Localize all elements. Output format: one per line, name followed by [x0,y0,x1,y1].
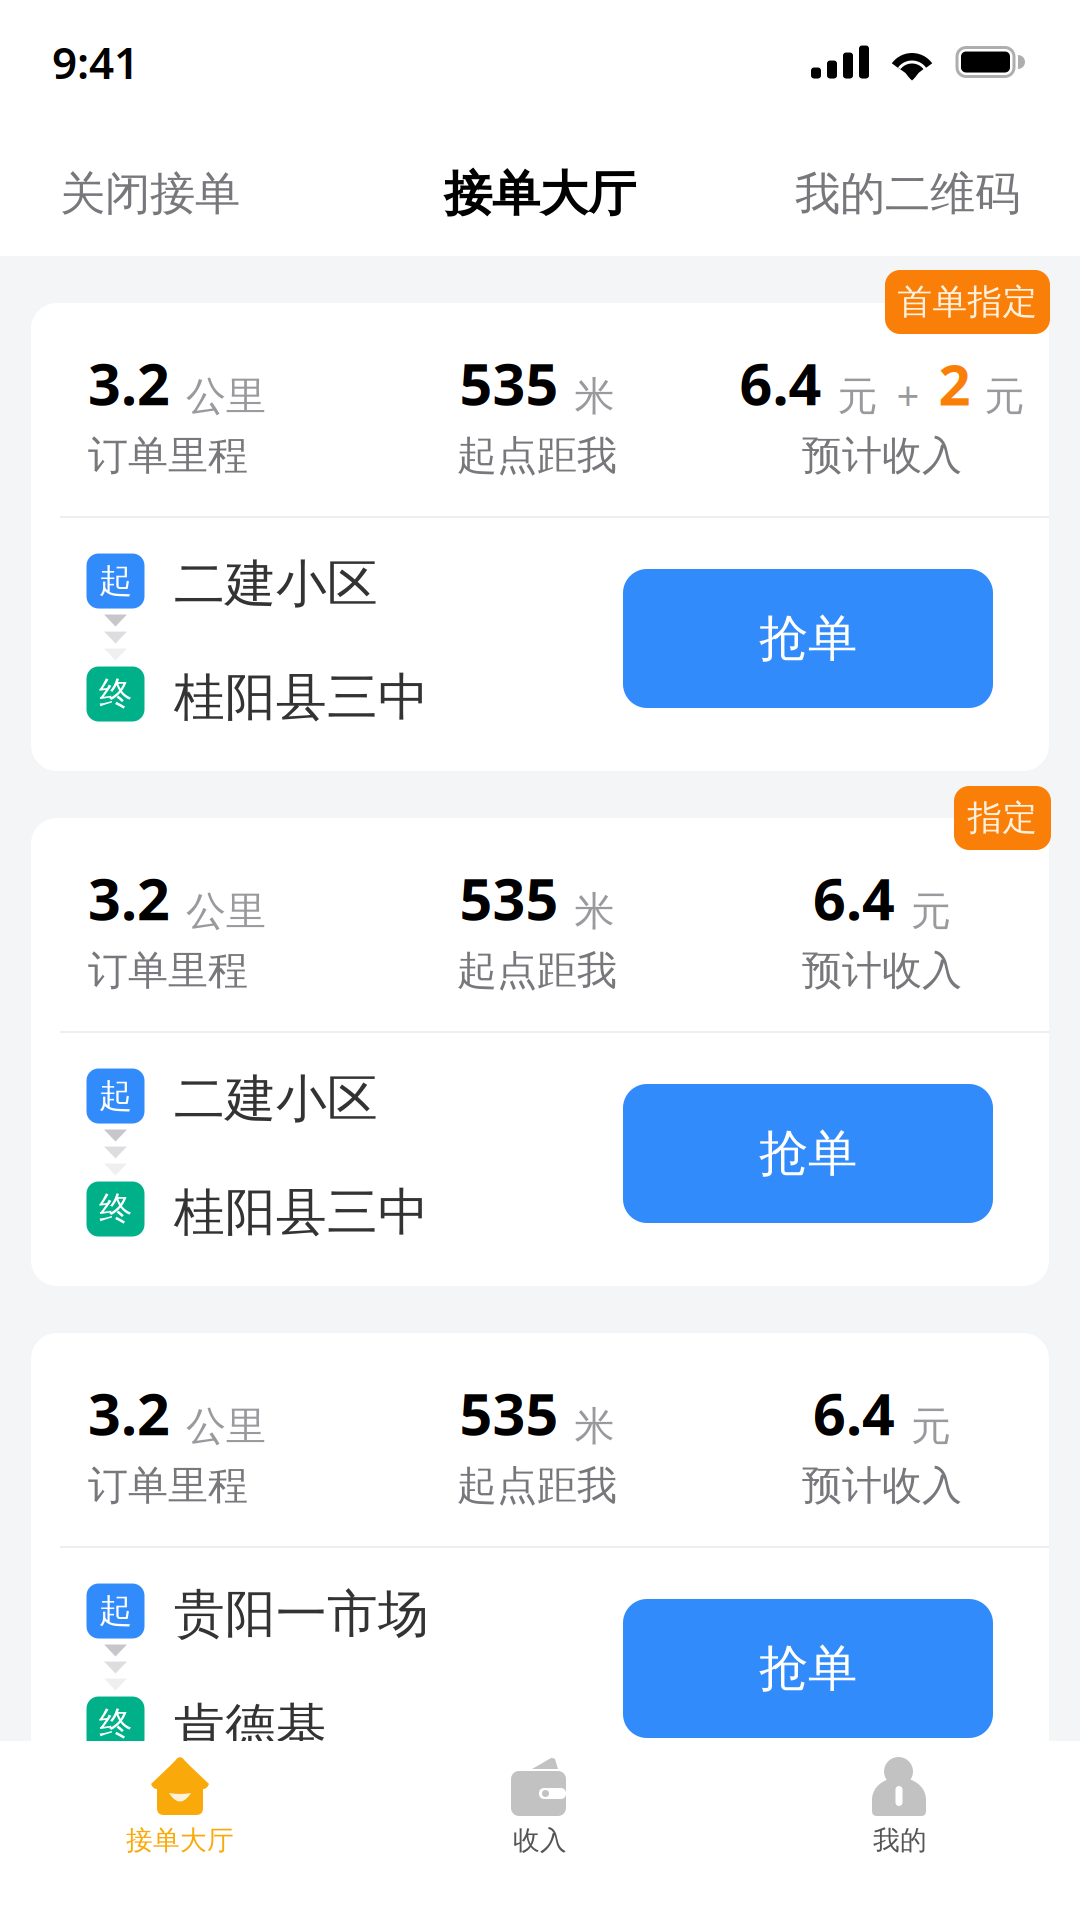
staticText: 我的二维码 [795,166,1020,222]
staticText: 关闭接单 [60,166,240,222]
staticText: 接单大厅 [444,164,636,223]
staticText: 收入 [513,1824,567,1857]
staticText: 元 [911,1402,951,1451]
staticText: 米 [574,887,614,936]
staticText: 抢单 [759,608,857,669]
button[interactable]: 抢单 [623,1084,993,1223]
staticText: 抢单 [759,1638,857,1699]
staticText: + [896,368,919,421]
staticText: 肯德基 [174,1696,327,1758]
staticText: 3.2 [88,1375,170,1451]
staticText: 6.4 [739,345,821,421]
staticText: 预计收入 [802,946,962,995]
staticText: 公里 [186,372,266,421]
staticText: 3.2 [88,345,170,421]
staticText: 终 [99,1703,132,1744]
staticText: 二建小区 [174,1068,378,1130]
staticText: 公里 [186,887,266,936]
staticText: 元 [837,372,877,421]
staticText: 桂阳县三中 [174,666,429,728]
staticText: 起点距我 [457,1461,617,1510]
staticText: 订单里程 [88,946,248,995]
staticText: 起点距我 [457,431,617,480]
button[interactable]: 收入 [360,1741,720,1920]
staticText: 抢单 [759,1123,857,1184]
button[interactable]: 我的 [720,1741,1080,1920]
button[interactable]: 关闭接单 [0,116,274,256]
staticText: 起点距我 [457,946,617,995]
staticText: 二建小区 [174,553,378,615]
staticText: 起 [99,560,132,601]
staticText: 535 [459,860,558,936]
staticText: 终 [99,673,132,714]
button[interactable]: 抢单 [623,569,993,708]
staticText: 起 [99,1075,132,1116]
staticText: 接单大厅 [126,1824,234,1857]
button[interactable]: 我的二维码 [761,116,1080,256]
staticText: 我的 [873,1824,927,1857]
staticText: 指定 [967,797,1037,839]
staticText: 米 [574,372,614,421]
button[interactable]: 接单大厅 [0,1741,360,1920]
staticText: 桂阳县三中 [174,1181,429,1243]
staticText: 元 [911,887,951,936]
button[interactable]: 抢单 [623,1599,993,1738]
staticText: 贵阳一市场 [174,1583,429,1645]
staticText: 预计收入 [802,431,962,480]
staticText: 3.2 [88,860,170,936]
staticText: 订单里程 [88,431,248,480]
staticText: 米 [574,1402,614,1451]
staticText: 预计收入 [802,1461,962,1510]
staticText: 终 [99,1188,132,1229]
staticText: 元 [984,372,1024,421]
staticText: 公里 [186,1402,266,1451]
staticText: 9:41 [52,33,139,91]
staticText: 起 [99,1590,132,1631]
staticText: 2 [938,347,970,421]
staticText: 6.4 [813,1375,895,1451]
staticText: 535 [459,345,558,421]
staticText: 6.4 [813,860,895,936]
staticText: 订单里程 [88,1461,248,1510]
staticText: 535 [459,1375,558,1451]
staticText: 首单指定 [897,281,1037,323]
